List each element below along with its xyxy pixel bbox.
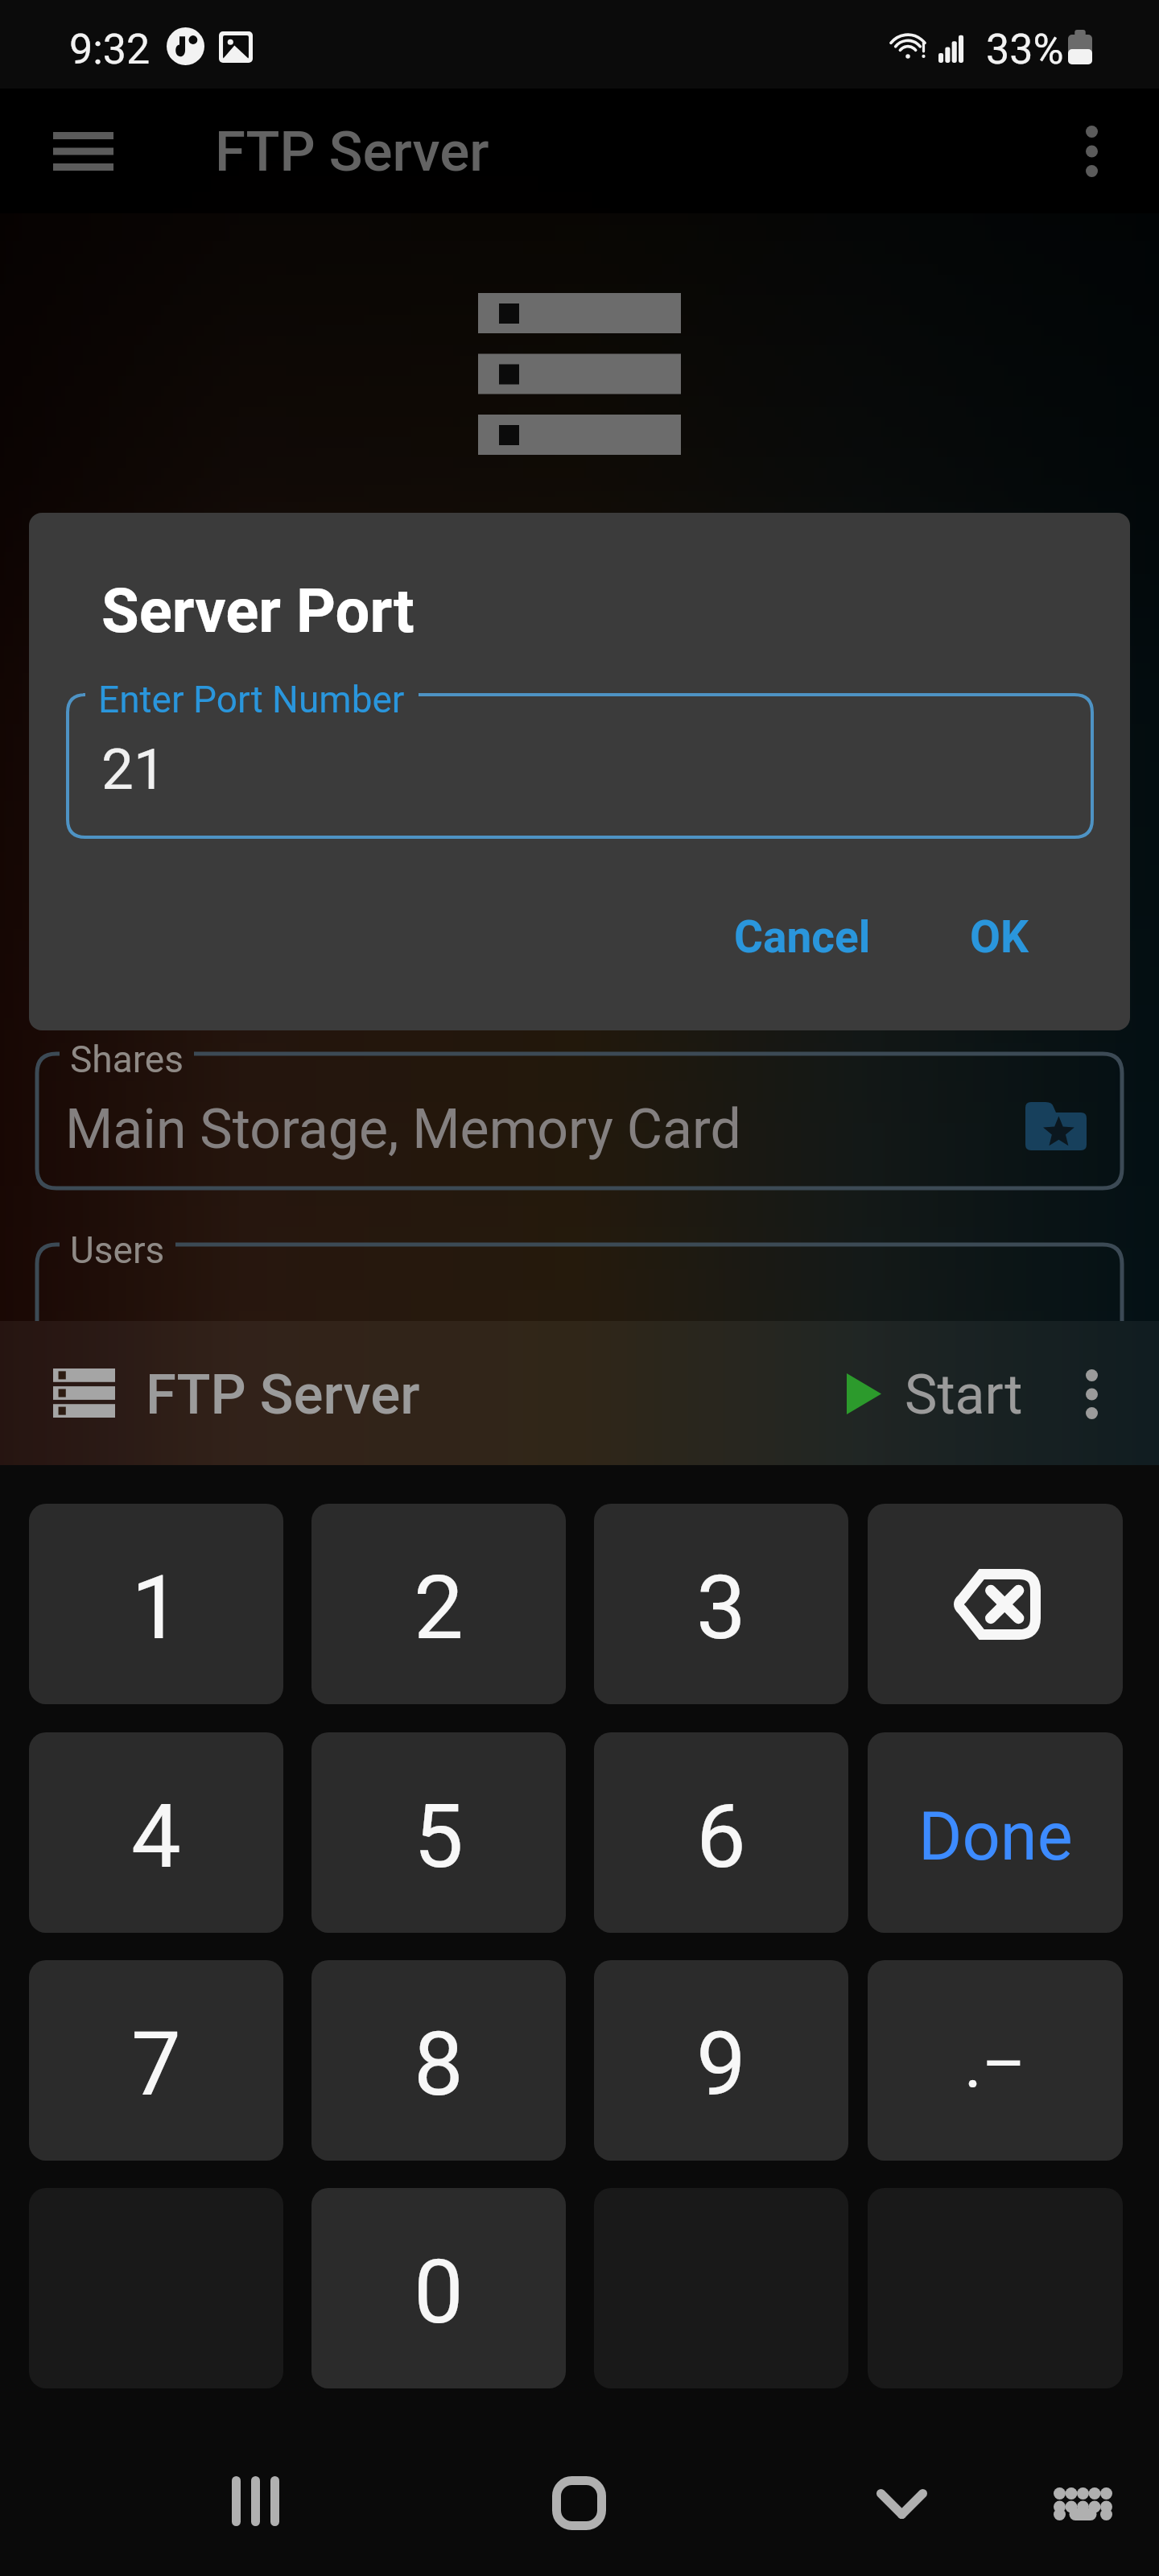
staticText: Shares — [70, 1038, 184, 1081]
button[interactable] — [868, 1504, 1123, 1704]
staticText: Main Storage, Memory Card — [65, 1097, 741, 1162]
button[interactable]: Backspace — [868, 1504, 1123, 1704]
staticText: .– — [964, 2025, 1026, 2103]
button[interactable]: Users — [37, 1245, 1122, 1379]
button[interactable]: 5 — [311, 1732, 566, 1933]
button[interactable]: FTP Server — [32, 1345, 483, 1442]
staticText: 9 — [696, 2013, 746, 2116]
staticText: Start — [905, 1363, 1023, 1427]
button[interactable]: 3 — [594, 1504, 848, 1704]
button[interactable]: 0 — [311, 2188, 566, 2388]
button[interactable]: Shares — [37, 1054, 1122, 1188]
button[interactable]: 1 — [29, 1504, 283, 1704]
button[interactable]: .– — [868, 1960, 1123, 2161]
button[interactable]: 8 — [311, 1960, 566, 2161]
staticText: FTP Server — [215, 119, 489, 184]
button[interactable]: Choose shares — [1000, 1078, 1112, 1174]
button[interactable]: OK — [947, 890, 1051, 984]
staticText: 3 — [696, 1556, 746, 1660]
staticText: Server Port — [101, 575, 415, 646]
button[interactable]: 7 — [29, 1960, 283, 2161]
button[interactable]: Hide keyboard — [857, 2459, 946, 2548]
staticText: 2 — [414, 1556, 464, 1660]
staticText: OK — [970, 911, 1029, 963]
staticText: 33% — [986, 25, 1064, 74]
staticText: 7 — [131, 2013, 181, 2116]
button[interactable]: Recent apps — [211, 2457, 299, 2545]
staticText: 0 — [414, 2240, 464, 2344]
staticText: 9:32 — [69, 25, 151, 74]
button[interactable]: Navigation menu — [45, 109, 122, 192]
button[interactable]: Server options — [1053, 1324, 1131, 1461]
staticText: 1 — [131, 1556, 181, 1660]
staticText: Cancel — [734, 911, 871, 963]
staticText: FTP Server — [146, 1362, 420, 1427]
button[interactable]: Done — [868, 1732, 1123, 1933]
staticText: 21 — [101, 736, 166, 803]
button[interactable]: Home — [534, 2458, 624, 2548]
staticText: 4 — [131, 1785, 181, 1889]
staticText: 6 — [696, 1785, 746, 1889]
staticText: 8 — [414, 2013, 464, 2116]
button[interactable]: Change keyboard — [1038, 2459, 1127, 2548]
staticText: Done — [918, 1798, 1073, 1876]
button[interactable]: Start — [829, 1345, 1040, 1442]
button[interactable]: 4 — [29, 1732, 283, 1933]
staticText: Users — [70, 1228, 165, 1272]
staticText: 5 — [414, 1785, 464, 1889]
button[interactable]: More options — [1053, 105, 1131, 196]
button[interactable]: 9 — [594, 1960, 848, 2161]
staticText: Enter Port Number — [98, 678, 405, 721]
button[interactable]: Enter Port Number — [68, 695, 1092, 837]
button[interactable]: 6 — [594, 1732, 848, 1933]
button[interactable]: 2 — [311, 1504, 566, 1704]
button[interactable]: Cancel — [711, 890, 893, 984]
